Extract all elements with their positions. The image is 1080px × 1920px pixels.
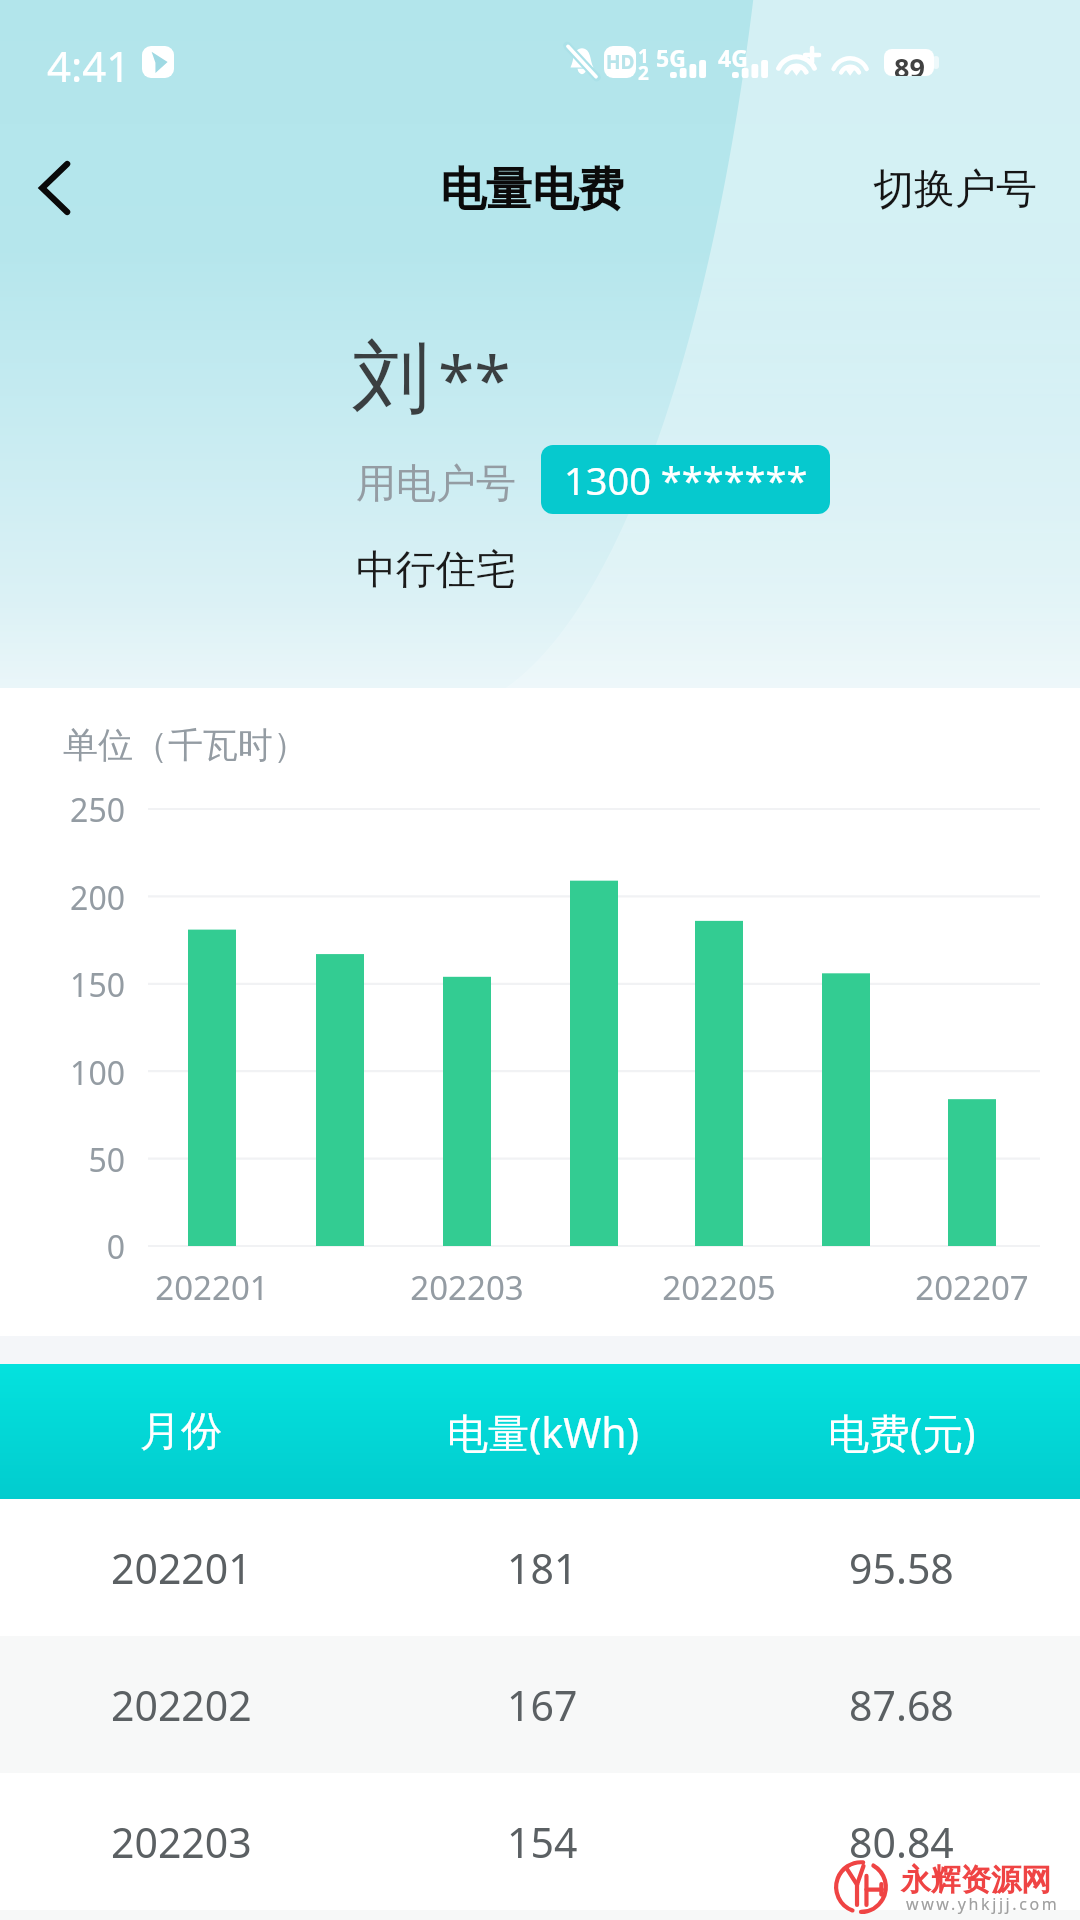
button[interactable]: 202203 [0,1773,1080,1910]
staticText: 100 [70,1051,125,1095]
staticText: 永辉资源网 [901,1861,1051,1899]
staticText: 单位（千瓦时） [63,723,308,767]
staticText: 电量电费 [440,161,624,219]
button[interactable]: 1300 ******* [541,445,830,514]
staticText: 0 [106,1225,125,1269]
staticText: 181 [507,1540,578,1596]
staticText: 202201 [111,1540,252,1596]
button[interactable]: 切换户号 [857,152,1053,228]
staticText: 202207 [915,1265,1029,1310]
staticText: ** [438,333,511,423]
staticText: 89 [894,49,925,76]
staticText: 2 [638,60,649,86]
staticText: 50 [88,1138,125,1182]
staticText: 202203 [111,1814,252,1870]
staticText: 250 [70,788,125,832]
staticText: 202201 [155,1265,269,1310]
staticText: 1300 ******* [564,454,808,506]
staticText: 月份 [140,1406,222,1458]
staticText: 202205 [662,1265,776,1310]
staticText: www.yhkjjj.com [906,1893,1060,1915]
staticText: 202203 [410,1265,524,1310]
staticText: 167 [507,1677,578,1733]
staticText: 5G [656,42,686,73]
staticText: 4:41 [47,37,131,94]
staticText: 202202 [111,1677,252,1733]
staticText: 87.68 [849,1677,954,1733]
staticText: 80.84 [849,1814,954,1870]
staticText: 刘 [352,329,430,427]
staticText: 电量(kWh) [447,1404,639,1460]
staticText: 用电户号 [356,458,516,508]
button[interactable]: Back [0,133,110,243]
button[interactable]: 202201 [0,1499,1080,1636]
staticText: 200 [70,876,125,920]
staticText: 中行住宅 [356,544,516,594]
staticText: 95.58 [849,1540,954,1596]
staticText: 电费(元) [828,1404,976,1460]
button[interactable]: 202202 [0,1636,1080,1773]
staticText: 150 [70,963,125,1007]
staticText: 切换户号 [873,164,1037,216]
staticText: 154 [507,1814,578,1870]
staticText: 1 [638,43,649,69]
staticText: HD [606,49,635,75]
staticText: 4G [718,42,748,73]
